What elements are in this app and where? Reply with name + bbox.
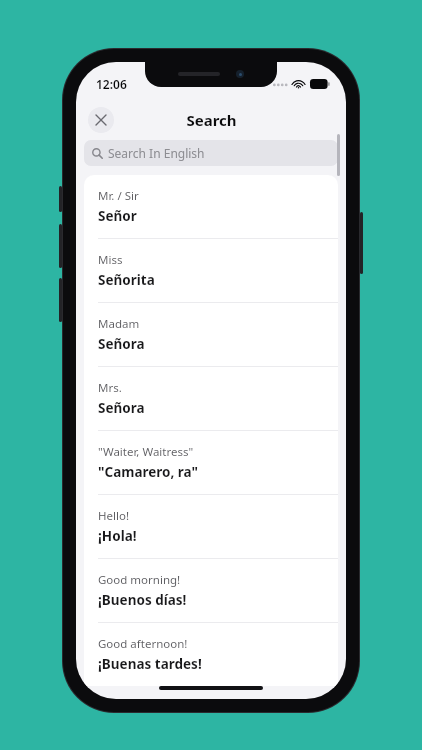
staticText: Señora <box>98 335 145 353</box>
staticText: Señorita <box>98 271 155 289</box>
staticText: Hello! <box>98 508 129 524</box>
staticText: 12:06 <box>96 76 127 92</box>
staticText: Madam <box>98 316 140 332</box>
staticText: Mr. / Sir <box>98 188 139 204</box>
button[interactable]: "Waiter, Waitress" <box>84 431 338 494</box>
staticText: "Camarero, ra" <box>98 463 199 481</box>
button[interactable]: Good afternoon! <box>84 623 338 686</box>
button[interactable]: Mrs. <box>84 367 338 430</box>
staticText: ¡Buenas tardes! <box>98 655 202 673</box>
button[interactable]: Search In English <box>84 140 338 166</box>
staticText: Señor <box>98 207 137 225</box>
staticText: Mrs. <box>98 380 122 396</box>
staticText: Search <box>186 110 237 130</box>
staticText: "Waiter, Waitress" <box>98 444 194 460</box>
button[interactable]: Madam <box>84 303 338 366</box>
button[interactable]: Mr. / Sir <box>84 175 338 238</box>
staticText: Good morning! <box>98 572 181 588</box>
button[interactable]: Close <box>88 107 114 133</box>
staticText: ¡Buenos días! <box>98 591 187 609</box>
button[interactable]: Hello! <box>84 495 338 558</box>
button[interactable]: Good morning! <box>84 559 338 622</box>
staticText: Search In English <box>108 145 205 161</box>
staticText: Good afternoon! <box>98 636 188 652</box>
staticText: ¡Hola! <box>98 527 137 545</box>
button[interactable]: Miss <box>84 239 338 302</box>
staticText: Miss <box>98 252 123 268</box>
staticText: Señora <box>98 399 145 417</box>
